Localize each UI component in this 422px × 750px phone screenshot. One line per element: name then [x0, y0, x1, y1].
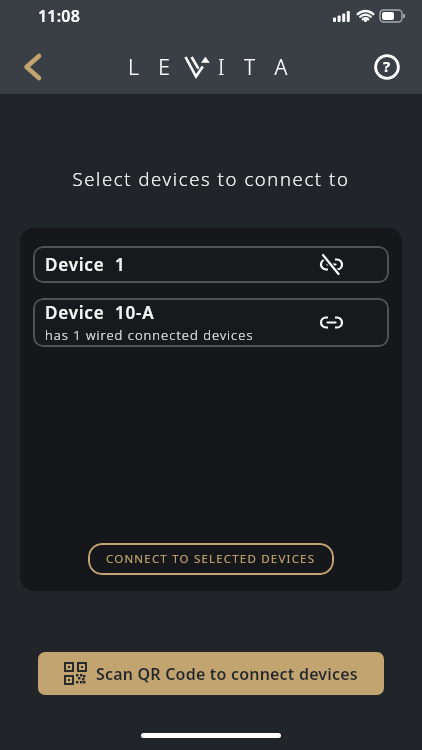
- staticText: Select devices to connect to: [0, 166, 422, 191]
- staticText: Scan QR Code to connect devices: [96, 663, 358, 685]
- button[interactable]: Device 1: [33, 246, 389, 283]
- button[interactable]: CONNECT TO SELECTED DEVICES: [88, 543, 334, 575]
- button[interactable]: [14, 49, 50, 85]
- staticText: L E: [128, 53, 177, 82]
- staticText: I T A: [218, 53, 295, 82]
- staticText: CONNECT TO SELECTED DEVICES: [106, 551, 316, 567]
- button[interactable]: Scan QR Code to connect devices: [38, 652, 384, 695]
- button[interactable]: Device 10-A: [33, 298, 389, 347]
- staticText: Device 10-A: [45, 301, 155, 324]
- button[interactable]: ?: [372, 52, 402, 82]
- staticText: 11:08: [38, 5, 81, 27]
- staticText: ?: [383, 56, 391, 76]
- staticText: Device 1: [45, 253, 126, 276]
- staticText: has 1 wired connected devices: [45, 326, 254, 344]
